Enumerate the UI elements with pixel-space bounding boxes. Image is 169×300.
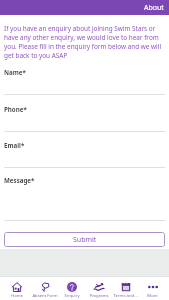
staticText: Home (11, 293, 23, 299)
button[interactable]: Programs (85, 276, 112, 300)
staticText: Absent Form (32, 293, 58, 299)
button[interactable]: About (139, 0, 169, 15)
staticText: If you have an enquiry about joining Swi… (4, 24, 165, 60)
staticText: Terms and ... (113, 293, 139, 299)
staticText: Name* (4, 68, 26, 76)
button[interactable]: More (139, 276, 166, 300)
staticText: Message* (4, 176, 35, 184)
button[interactable]: Enquiry (58, 276, 85, 300)
staticText: More (147, 293, 158, 299)
button[interactable]: Submit (4, 232, 165, 247)
button[interactable]: Home (3, 276, 31, 300)
staticText: Programs (89, 293, 109, 299)
staticText: Phone* (4, 105, 27, 113)
button[interactable]: Absent Form (31, 276, 58, 300)
staticText: Email* (4, 141, 25, 149)
staticText: About (144, 3, 164, 13)
staticText: Enquiry (64, 293, 80, 299)
staticText: Submit (73, 235, 97, 245)
button[interactable]: Terms and ... (112, 276, 139, 300)
